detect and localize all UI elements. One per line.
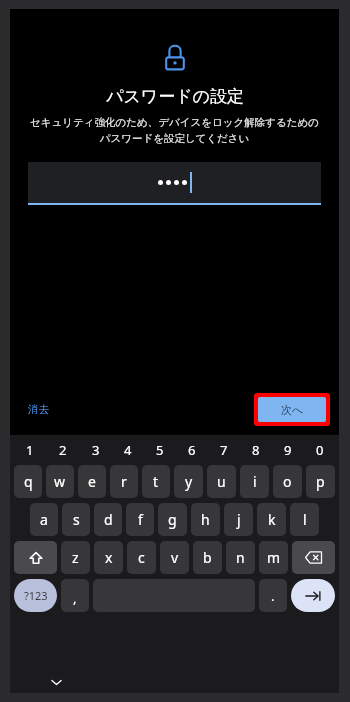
button[interactable]: u xyxy=(207,465,236,498)
button[interactable]: Hide keyboard xyxy=(46,672,66,692)
staticText: k xyxy=(268,510,276,529)
staticText: v xyxy=(171,548,179,567)
button[interactable]: 4 xyxy=(112,438,144,462)
button[interactable]: w xyxy=(46,465,74,498)
staticText: h xyxy=(201,510,210,529)
button[interactable]: , xyxy=(61,579,89,612)
button[interactable]: t xyxy=(142,465,170,498)
staticText: s xyxy=(73,510,80,529)
staticText: g xyxy=(168,510,177,529)
staticText: 7 xyxy=(220,441,228,459)
staticText: b xyxy=(203,548,212,567)
staticText: w xyxy=(54,472,66,491)
staticText: 次へ xyxy=(281,403,304,417)
staticText: m xyxy=(267,548,281,567)
staticText: r xyxy=(121,472,127,491)
staticText: ?123 xyxy=(24,588,48,603)
button[interactable]: 次へ xyxy=(258,397,326,422)
staticText: 2 xyxy=(59,441,67,459)
button[interactable]: ?123 xyxy=(14,579,57,612)
staticText: o xyxy=(283,472,292,491)
staticText: パスワードの設定 xyxy=(106,86,244,107)
staticText: 3 xyxy=(92,441,100,459)
button[interactable]: f xyxy=(126,503,154,536)
button[interactable]: o xyxy=(273,465,302,498)
staticText: e xyxy=(88,472,96,491)
staticText: 消去 xyxy=(28,403,49,416)
button[interactable]: 7 xyxy=(208,438,240,462)
button[interactable]: m xyxy=(259,541,288,574)
button[interactable]: p xyxy=(306,465,335,498)
button[interactable]: l xyxy=(290,503,319,536)
staticText: a xyxy=(40,510,48,529)
button[interactable]: k xyxy=(257,503,286,536)
staticText: , xyxy=(73,589,77,607)
staticText: x xyxy=(105,548,113,567)
button[interactable]: v xyxy=(160,541,189,574)
staticText: j xyxy=(237,510,241,529)
button[interactable]: Next xyxy=(291,579,335,612)
staticText: y xyxy=(185,472,193,491)
staticText: f xyxy=(138,510,143,529)
staticText: セキュリティ強化のため、デバイスをロック解除するためのパスワードを設定してくださ… xyxy=(28,116,321,145)
button[interactable]: 消去 xyxy=(22,398,55,421)
staticText: u xyxy=(217,472,226,491)
button[interactable]: r xyxy=(110,465,138,498)
staticText: p xyxy=(316,472,325,491)
staticText: 8 xyxy=(252,441,260,459)
button[interactable]: q xyxy=(14,465,42,498)
staticText: 5 xyxy=(156,441,164,459)
button[interactable]: n xyxy=(226,541,255,574)
button[interactable]: i xyxy=(240,465,269,498)
button[interactable]: 0 xyxy=(304,438,336,462)
other: Lock xyxy=(164,47,186,73)
staticText: c xyxy=(138,548,145,567)
staticText: d xyxy=(104,510,113,529)
button[interactable]: c xyxy=(127,541,156,574)
button[interactable]: Shift xyxy=(14,541,57,574)
staticText: 0 xyxy=(316,441,324,459)
staticText: . xyxy=(271,587,275,605)
staticText: q xyxy=(24,472,33,491)
button[interactable]: 6 xyxy=(176,438,208,462)
button[interactable]: b xyxy=(193,541,222,574)
staticText: 9 xyxy=(284,441,292,459)
button[interactable]: s xyxy=(62,503,90,536)
button[interactable]: g xyxy=(158,503,187,536)
button[interactable]: . xyxy=(259,579,287,612)
button[interactable]: 5 xyxy=(144,438,176,462)
button[interactable]: 2 xyxy=(46,438,79,462)
button[interactable]: j xyxy=(224,503,253,536)
button[interactable]: 1 xyxy=(13,438,46,462)
button[interactable]: z xyxy=(61,541,90,574)
staticText: 1 xyxy=(26,441,34,459)
staticText: z xyxy=(72,548,79,567)
button[interactable] xyxy=(28,162,321,203)
button[interactable]: x xyxy=(94,541,123,574)
staticText: t xyxy=(153,472,159,491)
staticText: l xyxy=(303,510,307,529)
staticText: n xyxy=(236,548,245,567)
staticText: i xyxy=(253,472,257,491)
button[interactable]: e xyxy=(78,465,106,498)
button[interactable]: 8 xyxy=(240,438,272,462)
button[interactable]: Backspace xyxy=(292,541,335,574)
staticText: 6 xyxy=(188,441,196,459)
button[interactable]: 9 xyxy=(272,438,304,462)
button[interactable]: d xyxy=(94,503,122,536)
button[interactable]: a xyxy=(30,503,58,536)
staticText: 4 xyxy=(124,441,132,459)
button[interactable]: h xyxy=(191,503,220,536)
button[interactable]: y xyxy=(174,465,203,498)
button[interactable]: 3 xyxy=(79,438,112,462)
